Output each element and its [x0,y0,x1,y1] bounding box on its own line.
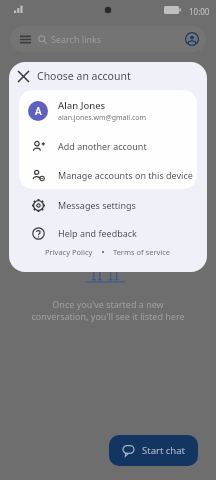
button[interactable]: Messages settings [9,191,207,219]
staticText: A [35,104,42,118]
button[interactable]: Privacy Policy [45,247,93,257]
button[interactable]: Close [9,62,37,90]
button[interactable]: Manage accounts on this device [19,160,197,189]
staticText: 10:00 [189,6,210,17]
staticText: Messages settings [58,199,136,211]
button[interactable]: Terms of service [113,247,171,257]
staticText: Start chat [142,444,185,457]
staticText: Once you've started a new conversation, … [31,298,185,323]
staticText: Manage accounts on this device [58,169,193,181]
button[interactable]: Start chat [109,435,198,466]
staticText: alan.jones.wm@gmail.com [58,113,147,123]
button[interactable]: A [19,90,197,131]
staticText: Help and feedback [58,227,137,239]
button[interactable]: Menu [10,26,206,52]
staticText: Alan Jones [58,99,106,112]
button[interactable]: Account [183,30,201,48]
staticText: Add another account [58,140,147,152]
button[interactable]: Menu [16,30,34,48]
staticText: Choose an account [37,69,131,83]
button[interactable]: Add another account [19,131,197,160]
button[interactable]: Help and feedback [9,219,207,247]
staticText: Search links [51,33,102,45]
